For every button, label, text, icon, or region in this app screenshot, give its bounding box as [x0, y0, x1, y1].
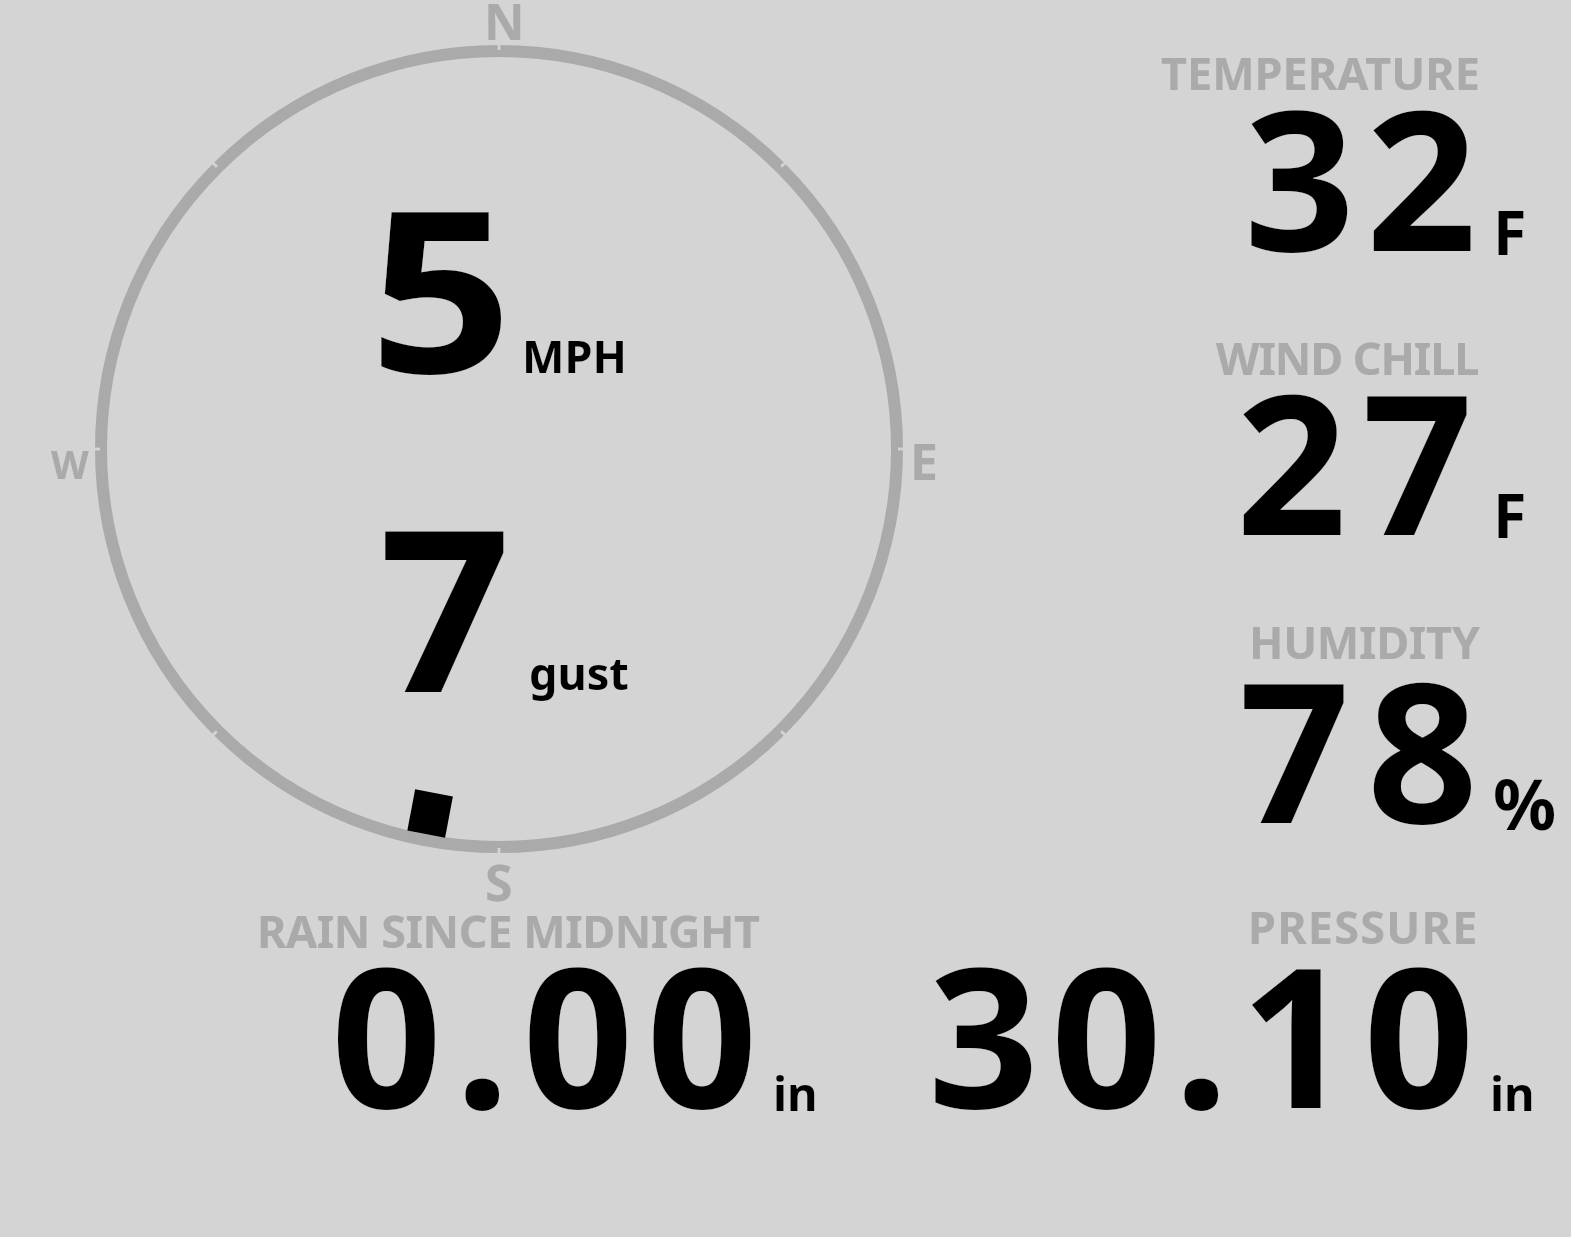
staticText: TEMPERATURE: [1161, 42, 1480, 103]
button[interactable]: Rain since midnight 0.00 inches: [250, 895, 830, 1125]
button[interactable]: Pressure 30.10 inches: [900, 895, 1570, 1125]
staticText: 5: [369, 134, 513, 439]
staticText: F: [1493, 473, 1527, 556]
staticText: N: [484, 0, 525, 55]
staticText: S: [485, 848, 513, 916]
staticText: RAIN SINCE MIDNIGHT: [257, 900, 760, 961]
staticText: 32: [1244, 44, 1488, 308]
staticText: MPH: [522, 325, 627, 386]
staticText: WIND CHILL: [1216, 327, 1479, 388]
staticText: in: [1490, 1061, 1535, 1125]
button[interactable]: Temperature 32 F: [1150, 40, 1570, 270]
staticText: F: [1493, 190, 1527, 273]
staticText: 27: [1236, 328, 1488, 592]
button[interactable]: Humidity 78 percent: [1150, 610, 1570, 840]
staticText: %: [1493, 755, 1557, 850]
staticText: W: [51, 437, 89, 490]
staticText: in: [773, 1061, 818, 1125]
staticText: gust: [529, 642, 629, 703]
staticText: 78: [1239, 616, 1495, 880]
staticText: HUMIDITY: [1249, 611, 1480, 672]
staticText: PRESSURE: [1248, 896, 1479, 957]
button[interactable]: Wind chill 27 F: [1150, 325, 1570, 553]
staticText: E: [910, 427, 938, 495]
staticText: 7: [379, 453, 512, 758]
staticText: 0.00: [331, 901, 771, 1165]
button[interactable]: Wind speed 5 miles per hour, gusting 7: [101, 51, 897, 847]
staticText: 30.10: [928, 901, 1487, 1165]
